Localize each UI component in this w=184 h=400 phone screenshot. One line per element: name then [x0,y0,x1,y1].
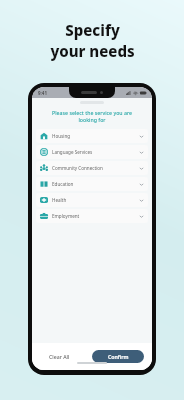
staticText: Housing [52,133,139,139]
staticText: Language Services [52,149,139,155]
button[interactable]: Clear All [40,349,79,364]
staticText: Employment [52,213,139,219]
staticText: Confirm [108,353,129,360]
button[interactable]: Housing [36,129,148,143]
staticText: Education [52,181,139,187]
staticText: Clear All [49,353,70,360]
staticText: Health [52,197,139,203]
staticText: Please select the service you are lookin… [52,109,132,123]
staticText: Specify [65,20,120,40]
button[interactable]: Employment [36,209,148,223]
staticText: 9:41 [38,90,47,96]
button[interactable]: Confirm [92,350,144,363]
button[interactable]: Health [36,193,148,207]
button[interactable]: Language Services [36,145,148,159]
button[interactable]: Education [36,177,148,191]
staticText: your needs [50,41,135,61]
button[interactable]: Community Connection [36,161,148,175]
staticText: Community Connection [52,165,139,171]
